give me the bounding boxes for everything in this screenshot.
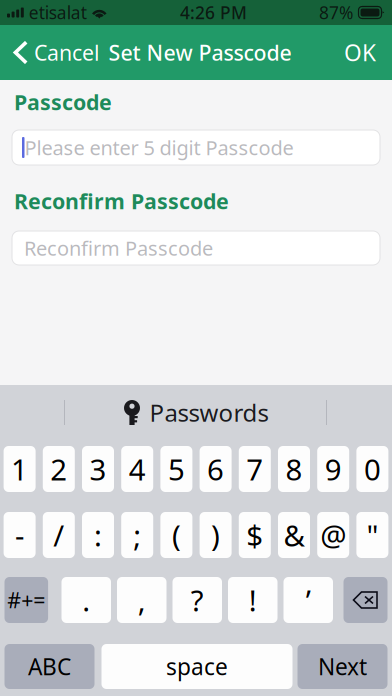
button[interactable]: #+= — [4, 577, 48, 623]
staticText: space — [166, 651, 228, 681]
staticText: Passcode — [14, 88, 112, 116]
staticText: $ — [246, 515, 263, 554]
button[interactable]: ; — [121, 512, 153, 558]
staticText: Reconfirm Passcode — [24, 235, 213, 261]
staticText: ’ — [306, 580, 311, 619]
staticText: 9 — [325, 449, 342, 488]
button[interactable]: , — [117, 577, 166, 623]
button[interactable]: 9 — [317, 446, 349, 492]
button[interactable]: 6 — [200, 446, 232, 492]
button[interactable]: & — [278, 512, 310, 558]
staticText: @ — [320, 515, 346, 554]
button[interactable]: Passwords — [109, 391, 282, 434]
button[interactable]: 0 — [356, 446, 388, 492]
button[interactable]: ! — [228, 577, 277, 623]
button[interactable]: ABC — [4, 644, 94, 689]
staticText: 3 — [89, 449, 106, 488]
button[interactable]: 8 — [278, 446, 310, 492]
button[interactable]: ) — [200, 512, 232, 558]
staticText: #+= — [7, 586, 45, 614]
button[interactable]: OK — [334, 27, 392, 77]
staticText: 2 — [50, 449, 67, 488]
staticText: - — [15, 515, 24, 554]
staticText: , — [138, 580, 146, 619]
staticText: 7 — [246, 449, 263, 488]
staticText: ! — [249, 580, 257, 619]
button[interactable]: 1 — [4, 446, 36, 492]
button[interactable]: ’ — [283, 577, 333, 623]
staticText: OK — [344, 37, 376, 67]
button[interactable]: Next — [297, 644, 387, 689]
button[interactable]: : — [82, 512, 114, 558]
staticText: ; — [133, 515, 141, 554]
staticText: 0 — [364, 449, 381, 488]
button[interactable]: Cancel — [0, 27, 106, 77]
staticText: & — [283, 515, 304, 554]
button[interactable]: @ — [317, 512, 349, 558]
staticText: 8 — [285, 449, 302, 488]
staticText: " — [366, 515, 378, 554]
staticText: 87% — [319, 1, 353, 24]
staticText: Please enter 5 digit Passcode — [24, 134, 293, 161]
staticText: ABC — [28, 651, 71, 681]
staticText: / — [53, 515, 64, 554]
staticText: Cancel — [34, 38, 100, 67]
button[interactable]: Delete — [343, 577, 387, 623]
button[interactable]: - — [4, 512, 36, 558]
button[interactable]: ? — [172, 577, 222, 623]
staticText: etisalat — [29, 1, 87, 24]
staticText: . — [82, 580, 90, 619]
button[interactable]: 5 — [160, 446, 192, 492]
staticText: 4 — [129, 449, 146, 488]
staticText: Reconfirm Passcode — [14, 187, 229, 215]
button[interactable]: 7 — [239, 446, 271, 492]
button[interactable]: 3 — [82, 446, 114, 492]
staticText: ? — [191, 580, 204, 619]
button[interactable]: " — [356, 512, 388, 558]
button[interactable]: ( — [160, 512, 192, 558]
button[interactable]: space — [101, 644, 292, 689]
button[interactable]: 2 — [43, 446, 75, 492]
button[interactable]: 4 — [121, 446, 153, 492]
staticText: Set New Passcode — [108, 38, 291, 67]
staticText: 4:26 PM — [180, 1, 247, 24]
staticText: Next — [318, 651, 367, 681]
staticText: : — [94, 515, 102, 554]
staticText: ) — [211, 515, 220, 554]
staticText: 5 — [168, 449, 185, 488]
button[interactable]: . — [61, 577, 111, 623]
staticText: 1 — [11, 449, 28, 488]
button[interactable]: $ — [239, 512, 271, 558]
staticText: 6 — [207, 449, 224, 488]
staticText: Passwords — [149, 397, 268, 428]
button[interactable]: / — [43, 512, 75, 558]
staticText: ( — [172, 515, 181, 554]
